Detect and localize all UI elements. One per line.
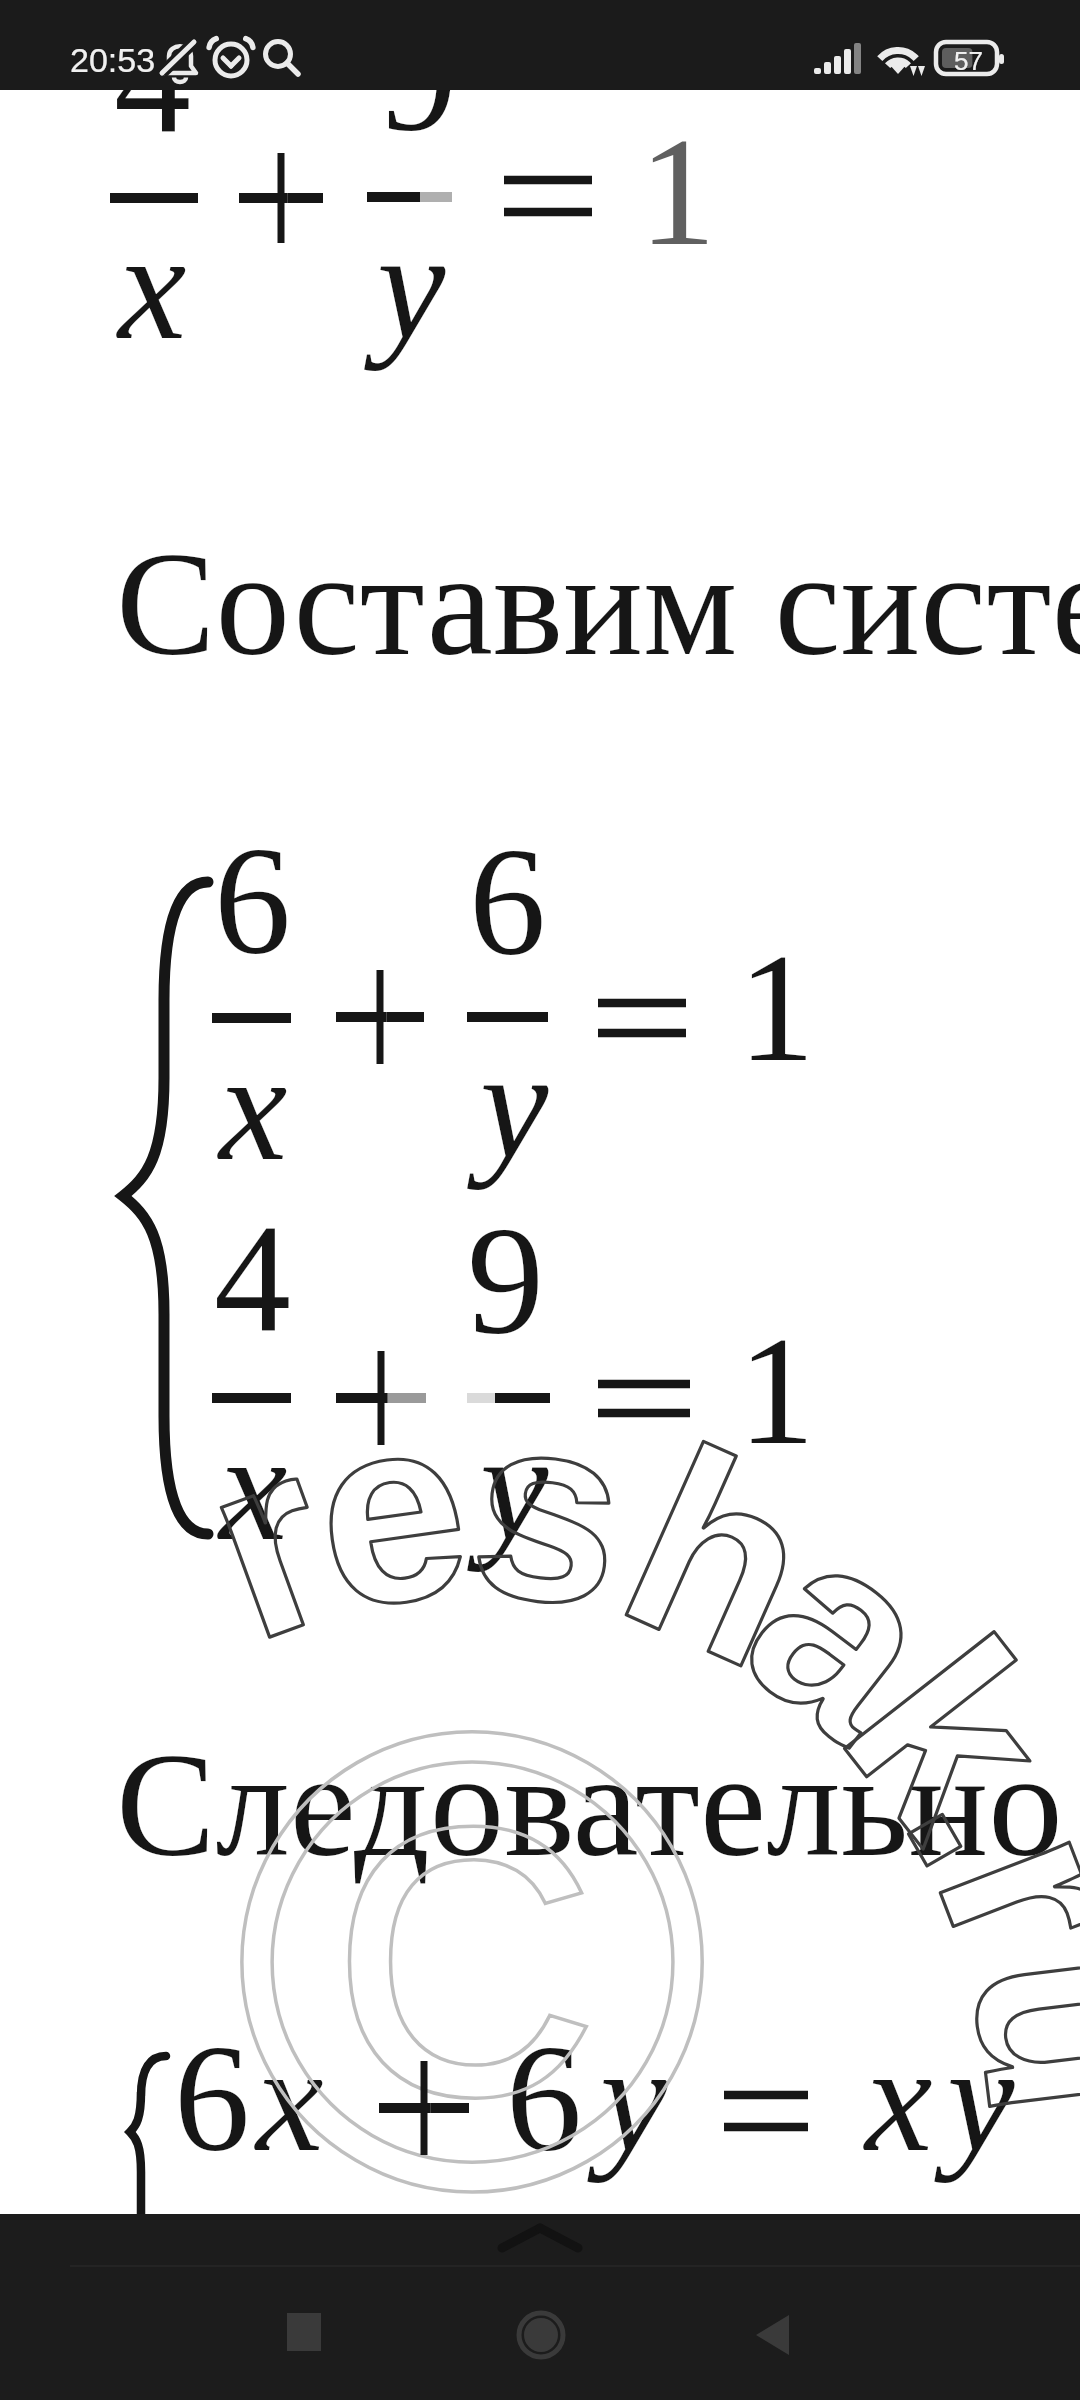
staticText: k — [789, 1588, 1080, 1884]
staticText: 9 — [380, 0, 457, 163]
staticText: 20:53 — [70, 41, 156, 79]
staticText: x — [256, 2015, 324, 2183]
staticText: a — [697, 1472, 993, 1793]
staticText: 1 — [639, 107, 716, 278]
staticText: y — [947, 2015, 1015, 2183]
button[interactable]: Back — [713, 2273, 833, 2393]
staticText: x — [118, 201, 187, 372]
button[interactable]: Show keyboard — [480, 2214, 600, 2276]
staticText: Следовательно — [116, 1722, 1063, 1887]
staticText: 1 — [738, 923, 815, 1094]
staticText: . — [851, 1700, 1080, 1910]
staticText: Составим систе — [116, 521, 1080, 686]
staticText: 4 — [214, 1193, 291, 1364]
staticText: © — [232, 1597, 713, 2325]
staticText: 4 — [114, 0, 191, 165]
button[interactable]: Recent apps — [243, 2273, 363, 2393]
staticText: x — [219, 1402, 288, 1573]
staticText: s — [459, 1355, 639, 1663]
staticText: h — [587, 1391, 853, 1724]
staticText: x — [865, 2015, 933, 2183]
staticText: r — [881, 1791, 1080, 1991]
staticText: u — [917, 1936, 1080, 2131]
staticText: r — [171, 1386, 367, 1696]
staticText: y — [480, 1020, 549, 1191]
staticText: 6 — [174, 2015, 250, 2183]
staticText: 6 — [506, 2015, 582, 2183]
staticText: 6 — [469, 816, 546, 987]
staticText: e — [299, 1355, 484, 1666]
staticText: y — [377, 201, 446, 372]
button[interactable]: Home — [481, 2273, 601, 2393]
staticText: 9 — [467, 1195, 544, 1366]
staticText: 57 — [954, 46, 983, 75]
staticText: y — [480, 1402, 549, 1573]
staticText: y — [600, 2015, 668, 2183]
staticText: x — [219, 1022, 288, 1193]
staticText: 1 — [738, 1306, 815, 1477]
staticText: 6 — [214, 815, 291, 986]
